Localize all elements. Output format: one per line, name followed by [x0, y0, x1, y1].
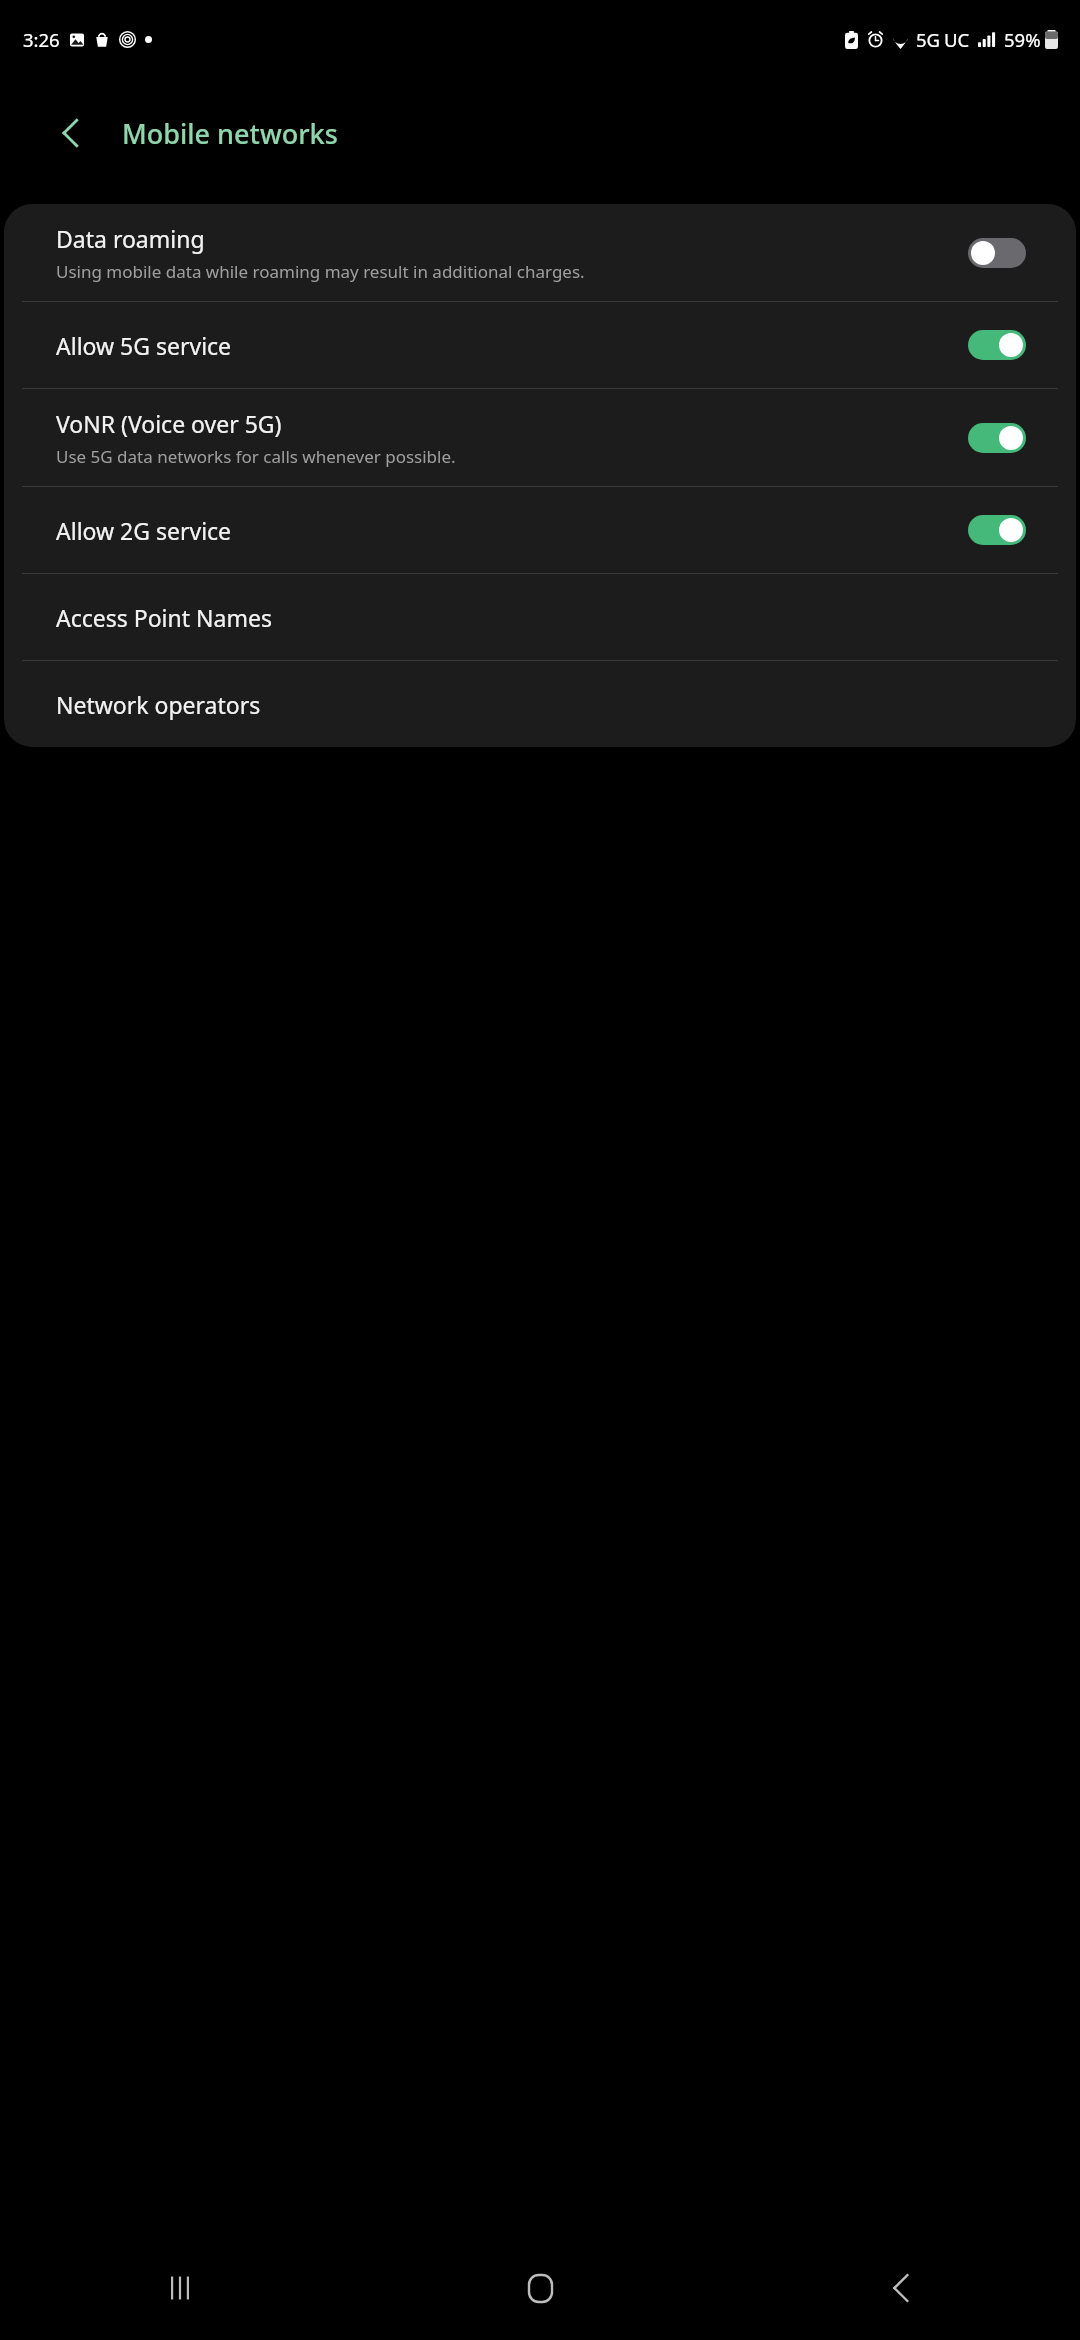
- button[interactable]: On: [968, 423, 1026, 453]
- staticText: Mobile networks: [122, 115, 338, 152]
- staticText: UC: [944, 27, 970, 52]
- staticText: Using mobile data while roaming may resu…: [56, 260, 585, 283]
- button[interactable]: Home: [360, 2236, 720, 2340]
- staticText: Access Point Names: [56, 602, 272, 633]
- staticText: Network operators: [56, 689, 261, 720]
- staticText: 5G: [916, 27, 941, 52]
- staticText: Allow 2G service: [56, 515, 232, 546]
- staticText: Allow 5G service: [56, 330, 232, 361]
- staticText: Use 5G data networks for calls whenever …: [56, 445, 456, 468]
- button[interactable]: Off: [968, 238, 1026, 268]
- button[interactable]: On: [968, 330, 1026, 360]
- button[interactable]: Recent apps: [0, 2236, 360, 2340]
- staticText: 3:26: [23, 27, 60, 52]
- button[interactable]: Allow 5G service: [4, 302, 1076, 388]
- button[interactable]: On: [968, 515, 1026, 545]
- button[interactable]: Access Point Names: [4, 574, 1076, 660]
- button[interactable]: VoNR (Voice over 5G): [4, 389, 1076, 486]
- button[interactable]: Network operators: [4, 661, 1076, 747]
- button[interactable]: Back: [720, 2236, 1080, 2340]
- staticText: Data roaming: [56, 223, 205, 254]
- button[interactable]: Data roaming: [4, 204, 1076, 301]
- staticText: 59%: [1004, 27, 1041, 52]
- staticText: VoNR (Voice over 5G): [56, 408, 282, 439]
- button[interactable]: Back: [40, 102, 102, 164]
- button[interactable]: Allow 2G service: [4, 487, 1076, 573]
